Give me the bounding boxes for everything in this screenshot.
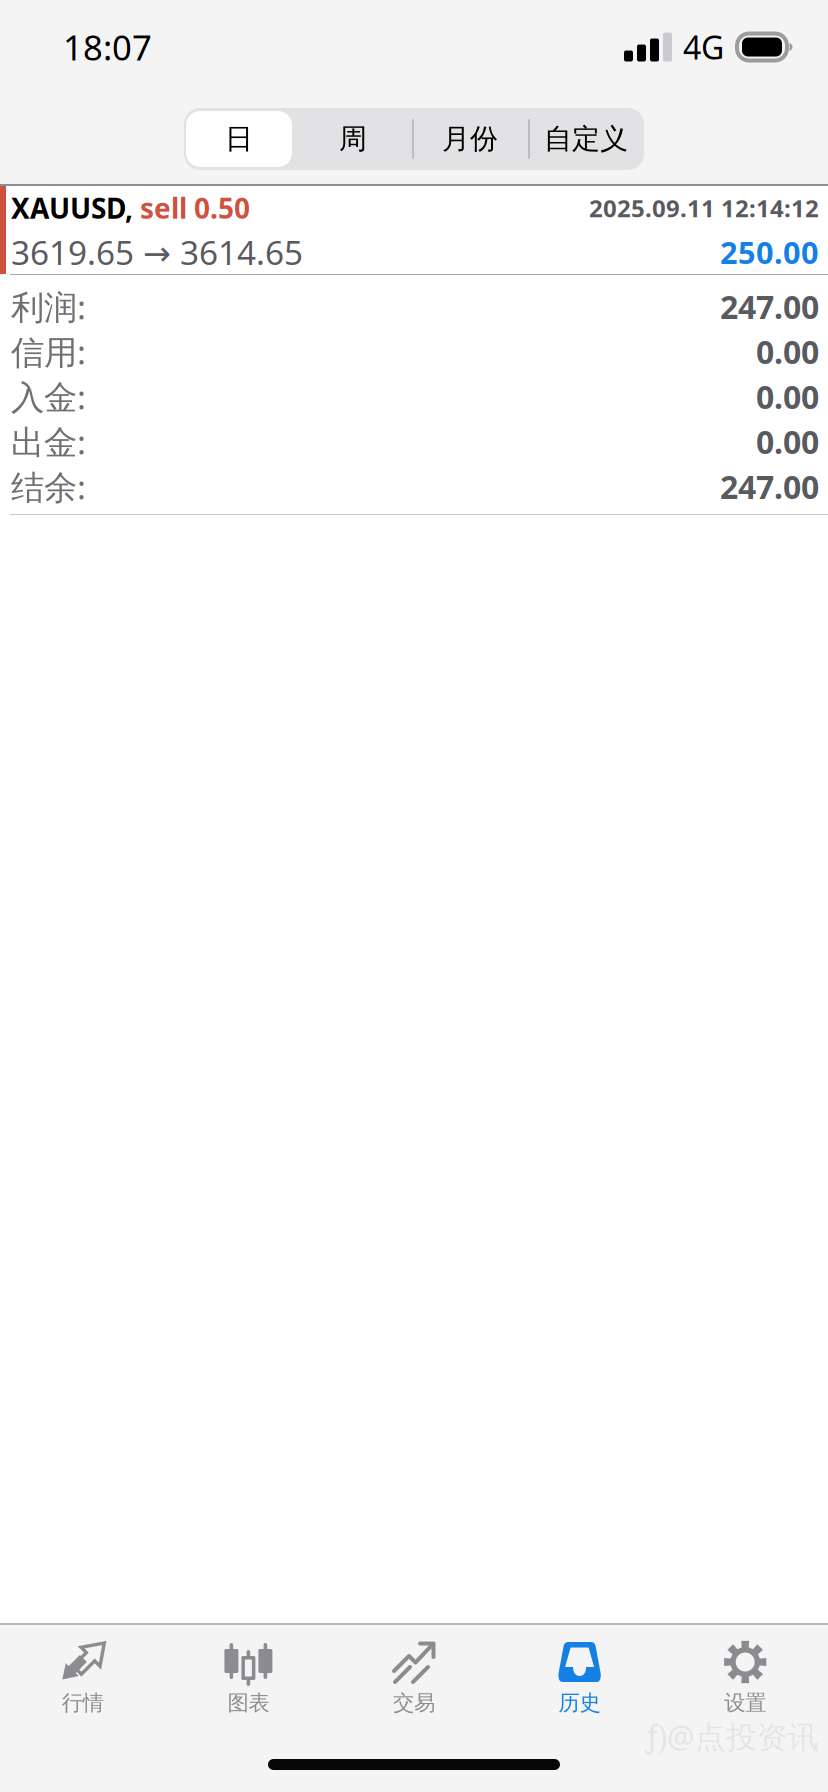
button[interactable]: 自定义	[528, 108, 644, 170]
staticText: 0.00	[756, 330, 819, 373]
staticText: 2025.09.11 12:14:12	[589, 192, 819, 224]
staticText: 行情	[62, 1690, 104, 1716]
staticText: 出金:	[11, 419, 86, 464]
staticText: XAUUSD,	[11, 189, 140, 227]
staticText: 0.00	[756, 420, 819, 463]
staticText: 250.00	[720, 232, 819, 272]
staticText: ƒ)@点投资讯	[645, 1716, 819, 1756]
staticText: 自定义	[544, 122, 628, 156]
button[interactable]: 交易	[331, 1625, 497, 1721]
button[interactable]: 历史	[497, 1625, 662, 1721]
staticText: 18:07	[63, 24, 152, 70]
staticText: 交易	[393, 1690, 435, 1716]
staticText: 图表	[227, 1690, 269, 1716]
staticText: 日	[225, 122, 253, 156]
staticText: 入金:	[11, 374, 86, 419]
button[interactable]: 周	[294, 108, 412, 170]
staticText: 周	[339, 122, 367, 156]
staticText: sell 0.50	[140, 189, 250, 227]
staticText: 247.00	[720, 465, 819, 508]
staticText: 设置	[724, 1690, 766, 1716]
button[interactable]: 设置	[662, 1625, 828, 1721]
button[interactable]: 日	[184, 108, 294, 170]
button[interactable]: 图表	[166, 1625, 331, 1721]
staticText: 247.00	[720, 285, 819, 328]
staticText: 0.00	[756, 375, 819, 418]
staticText: 月份	[442, 122, 498, 156]
button[interactable]: 月份	[412, 108, 528, 170]
staticText: 利润:	[11, 284, 86, 329]
staticText: 结余:	[11, 464, 86, 509]
staticText: 信用:	[11, 329, 86, 374]
button[interactable]: XAUUSD,	[0, 186, 828, 274]
staticText: 4G	[683, 26, 724, 68]
staticText: 历史	[559, 1690, 601, 1716]
button[interactable]: 行情	[0, 1625, 166, 1721]
staticText: 3619.65 → 3614.65	[11, 230, 303, 274]
